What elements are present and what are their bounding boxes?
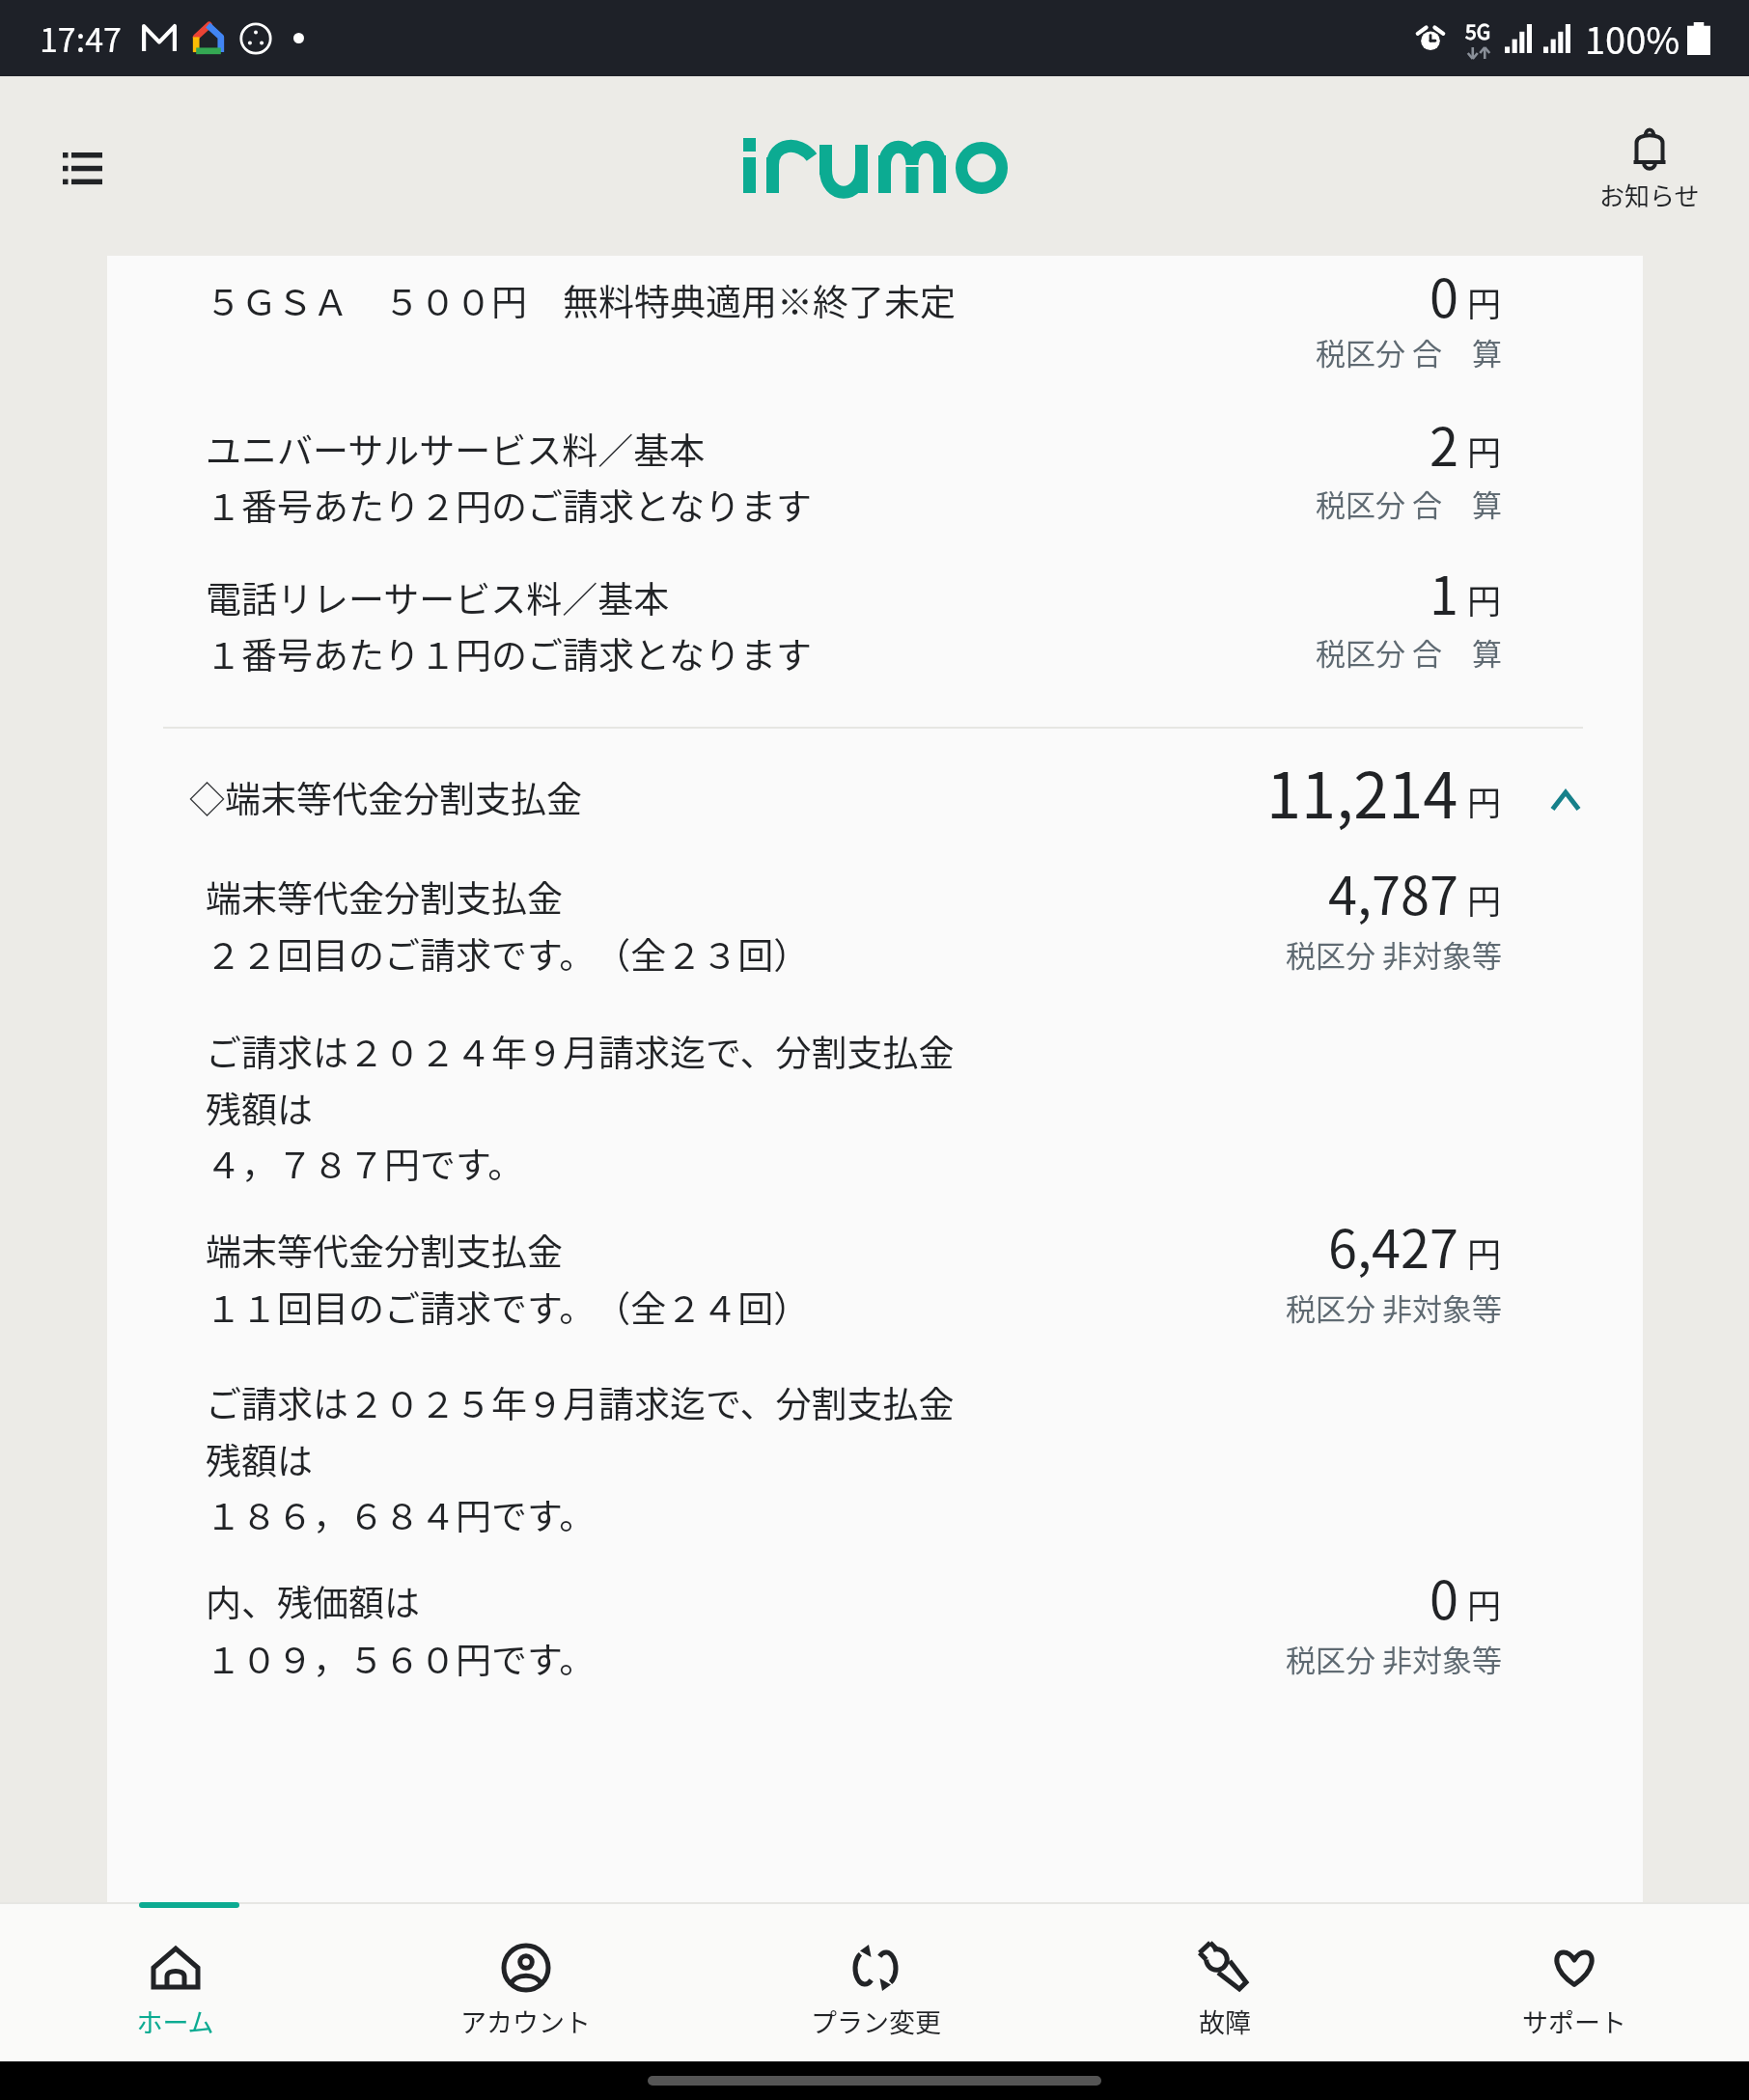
staticText: 電話リレーサービス料／基本	[206, 571, 670, 623]
staticText: お知らせ	[1599, 177, 1700, 213]
staticText: 100%	[1585, 12, 1680, 65]
staticText: 税区分 非対象等	[1286, 932, 1502, 976]
staticText: 端末等代金分割支払金	[206, 1224, 563, 1276]
staticText: 円	[1467, 776, 1502, 825]
staticText: ご請求は２０２４年９月請求迄で、分割支払金	[206, 1025, 955, 1077]
button[interactable]: メニュー	[39, 125, 125, 212]
staticText: 残額は	[206, 1082, 313, 1134]
staticText: 0	[1430, 1559, 1458, 1634]
staticText: 故障	[1199, 2003, 1251, 2040]
staticText: 残額は	[206, 1433, 313, 1485]
button[interactable]: 故障	[1050, 1902, 1400, 2061]
staticText: １番号あたり１円のご請求となります	[206, 627, 812, 679]
button[interactable]: ホーム	[0, 1902, 350, 2061]
staticText: 円	[1467, 574, 1502, 623]
staticText: 6,427	[1328, 1207, 1458, 1283]
staticText: 税区分 非対象等	[1286, 1285, 1502, 1329]
staticText: ２２回目のご請求です。（全２３回）	[206, 927, 810, 980]
staticText: ４，７８７円です。	[206, 1137, 524, 1189]
staticText: 17:47	[40, 14, 122, 62]
button[interactable]: サポート	[1400, 1902, 1749, 2061]
staticText: 5G	[1465, 16, 1491, 45]
staticText: ご請求は２０２５年９月請求迄で、分割支払金	[206, 1376, 955, 1428]
staticText: ５ＧＳＡ ５００円 無料特典適用※終了未定	[206, 274, 956, 326]
staticText: 円	[1467, 1579, 1502, 1628]
button[interactable]: プラン変更	[701, 1902, 1050, 2061]
staticText: 0	[1430, 257, 1458, 332]
staticText: 2	[1430, 405, 1458, 481]
staticText: プラン変更	[811, 2003, 941, 2040]
staticText: 円	[1467, 277, 1502, 326]
button[interactable]: お知らせ	[1591, 114, 1708, 221]
staticText: 税区分 合 算	[1316, 482, 1502, 525]
staticText: 円	[1467, 1228, 1502, 1277]
staticText: 円	[1467, 426, 1502, 475]
staticText: ユニバーサルサービス料／基本	[206, 423, 706, 475]
staticText: １８６，６８４円です。	[206, 1488, 596, 1540]
button[interactable]: アカウント	[350, 1902, 701, 2061]
staticText: 内、残価額は	[206, 1575, 420, 1627]
staticText: サポート	[1522, 2003, 1626, 2040]
staticText: 税区分 合 算	[1316, 330, 1502, 373]
staticText: １番号あたり２円のご請求となります	[206, 479, 812, 531]
button[interactable]	[107, 755, 1643, 843]
staticText: 4,787	[1328, 854, 1458, 929]
staticText: 円	[1467, 874, 1502, 924]
staticText: アカウント	[460, 2003, 591, 2040]
other: 折りたたむ	[1550, 788, 1583, 812]
staticText: 端末等代金分割支払金	[206, 870, 563, 923]
staticText: １１回目のご請求です。（全２４回）	[206, 1281, 810, 1333]
staticText: ホーム	[136, 2003, 214, 2040]
staticText: 税区分 合 算	[1316, 630, 1502, 674]
staticText: １０９，５６０円です。	[206, 1632, 596, 1684]
staticText: ◇端末等代金分割支払金	[189, 771, 582, 823]
staticText: 1	[1430, 554, 1458, 629]
staticText: 税区分 非対象等	[1286, 1637, 1502, 1680]
staticText: 11,214	[1266, 746, 1458, 837]
